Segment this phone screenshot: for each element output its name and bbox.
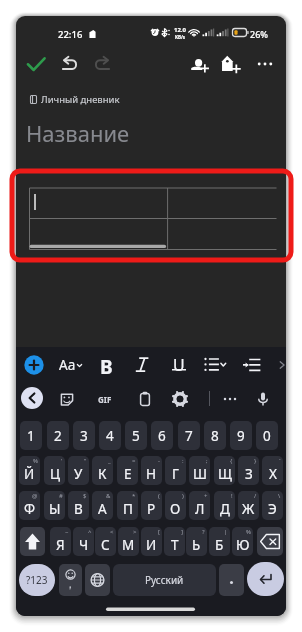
staticText: ~ [65,528,69,536]
button[interactable]: > [118,527,139,556]
staticText: ( [158,492,160,500]
button[interactable]: 4 [99,421,121,450]
button[interactable]: $ [68,491,89,520]
button[interactable]: # [44,491,65,520]
staticText: U [173,354,185,376]
button[interactable]: 7 [178,421,200,450]
button[interactable]: Insert [24,355,44,375]
staticText: Л [195,500,205,518]
button[interactable]: Back [21,387,43,409]
staticText: \ [278,492,281,500]
staticText: * [132,492,136,500]
button[interactable]: 6 [151,421,173,450]
staticText: - [158,457,160,465]
button[interactable]: Save [23,51,49,77]
button[interactable]: ' [44,456,65,485]
button[interactable]: Shift [20,527,45,556]
button[interactable]: : [165,456,186,485]
staticText: % [33,457,38,465]
staticText: М [122,536,135,554]
button[interactable]: \ [262,491,283,520]
button[interactable]: Change language [85,564,110,596]
button[interactable]: GIF [94,390,116,408]
staticText: 5 [132,427,140,445]
staticText: 22:16 [58,28,83,41]
staticText: B [100,354,113,376]
staticText: Название [26,118,130,148]
staticText: < [110,528,114,536]
staticText: ?123 [26,573,48,587]
button[interactable]: More options [252,51,278,77]
button[interactable]: Period [219,564,244,596]
button[interactable]: ` [262,456,283,485]
button[interactable]: ?123 [19,564,55,596]
staticText: 0 [263,427,271,445]
staticText: $ [83,492,87,500]
staticText: _ [108,457,111,465]
button[interactable]: Undo [57,51,83,77]
button[interactable]: Emoji [59,564,82,596]
button[interactable]: Русский [113,564,216,596]
button[interactable]: Underline [168,354,190,376]
button[interactable]: | [209,527,230,556]
button[interactable]: 9 [230,421,252,450]
button[interactable]: Bulleted list [202,354,228,376]
button[interactable]: Stickers [57,389,77,409]
button[interactable]: & [92,491,113,520]
staticText: 26% [250,28,268,40]
button[interactable]: / [238,491,259,520]
button[interactable]: Clipboard [135,389,155,409]
button[interactable]: + [189,491,210,520]
staticText: Р [147,500,156,518]
button[interactable]: 8 [204,421,226,450]
staticText: : [182,457,184,465]
button[interactable]: " [68,456,89,485]
button[interactable]: Voice input [253,389,273,409]
button[interactable]: Text style [59,355,83,375]
button[interactable]: ! [214,491,235,520]
button[interactable]: Add label [218,51,244,77]
staticText: 2 [54,427,62,445]
button[interactable]: [ [141,527,162,556]
staticText: Ю [236,536,250,554]
button[interactable]: 0 [256,421,278,450]
staticText: 8 [211,427,219,445]
button[interactable]: 5 [125,421,147,450]
button[interactable]: ; [189,456,210,485]
button[interactable]: ^ [73,527,94,556]
button[interactable]: 1 [20,421,42,450]
button[interactable]: - [141,456,162,485]
button[interactable]: Add collaborator [186,51,212,77]
button[interactable]: Enter [247,562,284,596]
button[interactable]: < [95,527,116,556]
button[interactable]: * [117,491,138,520]
staticText: Aa [59,356,76,374]
button[interactable]: Bold [95,354,117,376]
button[interactable]: Settings [170,389,190,409]
button[interactable]: = [117,456,138,485]
button[interactable]: ) [165,491,186,520]
button[interactable]: Redo [89,51,115,77]
button[interactable]: ? [186,527,207,556]
button[interactable]: % [232,527,253,556]
button[interactable]: } [238,456,259,485]
staticText: Г [172,465,179,483]
button[interactable]: 3 [73,421,95,450]
button[interactable]: { [214,456,235,485]
staticText: Ш [193,465,207,483]
staticText: Ы [49,500,61,518]
button[interactable]: Backspace [257,527,283,556]
button[interactable]: Личный дневник [30,93,120,106]
button[interactable]: 2 [47,421,69,450]
button[interactable]: More [220,389,240,409]
staticText: К [98,465,107,483]
button[interactable]: Indent [240,354,262,376]
staticText: 7 [185,427,193,445]
button[interactable]: Italic [131,354,153,376]
button[interactable]: % [19,456,40,485]
button[interactable]: @ [19,491,40,520]
button[interactable]: ~ [50,527,71,556]
button[interactable]: ] [164,527,185,556]
button[interactable]: _ [92,456,113,485]
button[interactable]: ( [141,491,162,520]
